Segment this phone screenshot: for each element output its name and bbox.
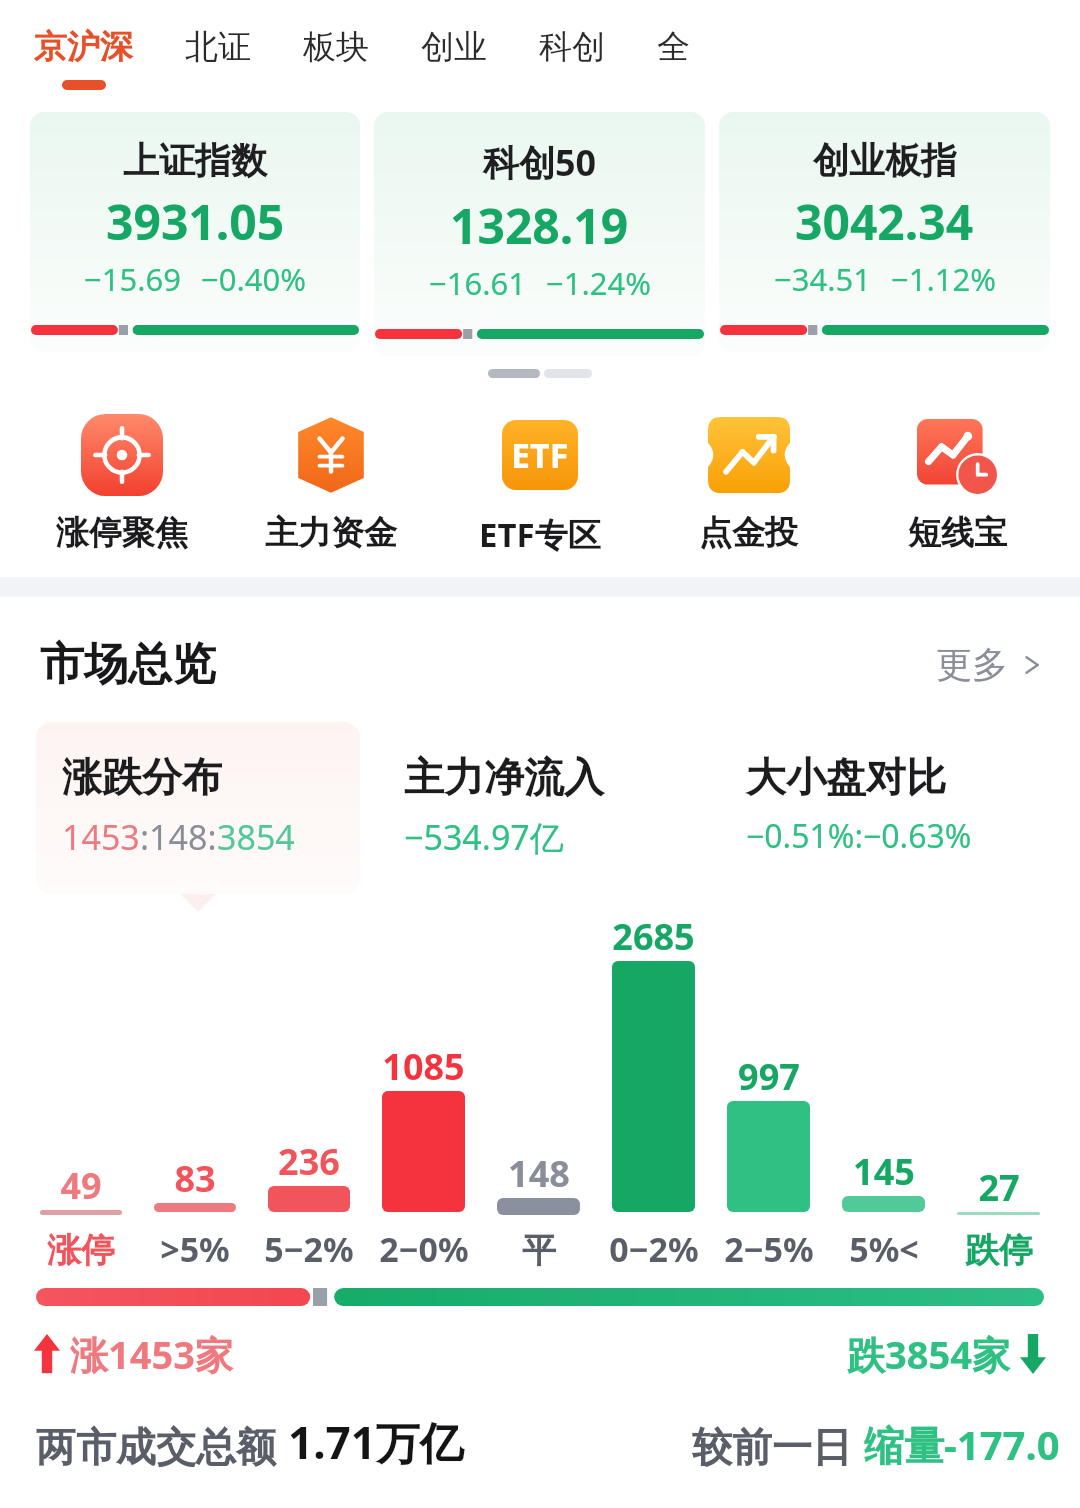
button[interactable]: 更多 (936, 642, 1046, 687)
button[interactable]: 创业 (419, 0, 489, 80)
staticText: 创业板指 (813, 138, 957, 183)
staticText: 市场总览 (40, 637, 216, 692)
staticText: 平 (522, 1229, 556, 1272)
staticText: −0.51%:−0.63% (746, 814, 972, 858)
staticText: 涨跌分布 (62, 752, 222, 802)
staticText: 创业 (421, 26, 487, 68)
staticText: −534.97亿 (404, 814, 564, 860)
staticText: :148: (140, 814, 217, 860)
button[interactable]: 科创50 (374, 112, 705, 356)
button[interactable]: 京沪深 (32, 0, 135, 90)
staticText: 涨停聚焦 (56, 512, 188, 554)
staticText: 5%< (849, 1226, 919, 1272)
staticText: 83 (174, 1154, 216, 1203)
button[interactable]: 涨跌分布 (36, 722, 360, 894)
staticText: −16.61 (429, 262, 526, 304)
staticText: ETF (511, 432, 569, 478)
button[interactable]: 上证指数 (30, 112, 360, 352)
staticText: 3931.05 (106, 189, 285, 254)
staticText: 跌3854家 (847, 1328, 1010, 1380)
staticText: −1.12% (891, 258, 996, 300)
button[interactable]: 科创 (537, 0, 607, 80)
staticText: 科创50 (483, 138, 597, 187)
staticText: −15.69 (84, 258, 181, 300)
staticText: 0−2% (609, 1226, 699, 1272)
staticText: 大小盘对比 (746, 752, 946, 802)
staticText: 1.71万亿 (288, 1412, 464, 1472)
staticText: 北证 (185, 26, 251, 68)
staticText: 236 (278, 1137, 340, 1186)
staticText: 跌停 (965, 1229, 1033, 1272)
button[interactable]: 北证 (183, 0, 253, 80)
staticText: 2−5% (724, 1226, 814, 1272)
button[interactable]: 短线宝 (853, 412, 1062, 554)
staticText: 板块 (303, 26, 369, 68)
staticText: 1085 (382, 1042, 465, 1091)
staticText: 49 (60, 1161, 102, 1210)
staticText: 997 (738, 1052, 800, 1101)
staticText: >5% (160, 1226, 230, 1272)
staticText: 科创 (539, 26, 605, 68)
button[interactable]: 板块 (301, 0, 371, 80)
staticText: 缩量-177.0 (864, 1417, 1060, 1472)
staticText: 1328.19 (450, 193, 629, 258)
staticText: 较前一日 (692, 1422, 852, 1472)
button[interactable]: 主力资金 (226, 412, 435, 554)
button[interactable]: 涨停聚焦 (18, 412, 226, 554)
staticText: 全 (657, 26, 690, 68)
staticText: 2685 (612, 912, 695, 961)
button[interactable]: ETF (435, 412, 644, 557)
button[interactable]: 创业板指 (719, 112, 1050, 352)
button[interactable]: 点金投 (644, 412, 853, 554)
staticText: 27 (978, 1163, 1020, 1212)
staticText: −0.40% (201, 258, 306, 300)
staticText: 148 (508, 1149, 570, 1198)
button[interactable]: 全 (655, 0, 692, 80)
staticText: 更多 (936, 642, 1008, 687)
button[interactable]: 大小盘对比 (720, 722, 1044, 892)
staticText: 3854 (217, 814, 295, 860)
button[interactable]: 主力净流入 (378, 722, 702, 894)
staticText: −34.51 (774, 258, 871, 300)
staticText: 涨停 (47, 1229, 115, 1272)
staticText: −1.24% (546, 262, 651, 304)
staticText: 京沪深 (34, 26, 133, 68)
staticText: 2−0% (379, 1226, 469, 1272)
staticText: 主力净流入 (404, 752, 604, 802)
staticText: 5−2% (264, 1226, 354, 1272)
staticText: 两市成交总额 (36, 1422, 276, 1472)
staticText: 主力资金 (265, 512, 397, 554)
staticText: 点金投 (699, 512, 798, 554)
staticText: 3042.34 (795, 189, 974, 254)
staticText: 145 (853, 1147, 915, 1196)
staticText: 涨1453家 (70, 1328, 233, 1380)
staticText: ETF专区 (479, 512, 601, 557)
staticText: 短线宝 (908, 512, 1007, 554)
staticText: 上证指数 (123, 138, 267, 183)
staticText: 1453 (62, 814, 140, 860)
